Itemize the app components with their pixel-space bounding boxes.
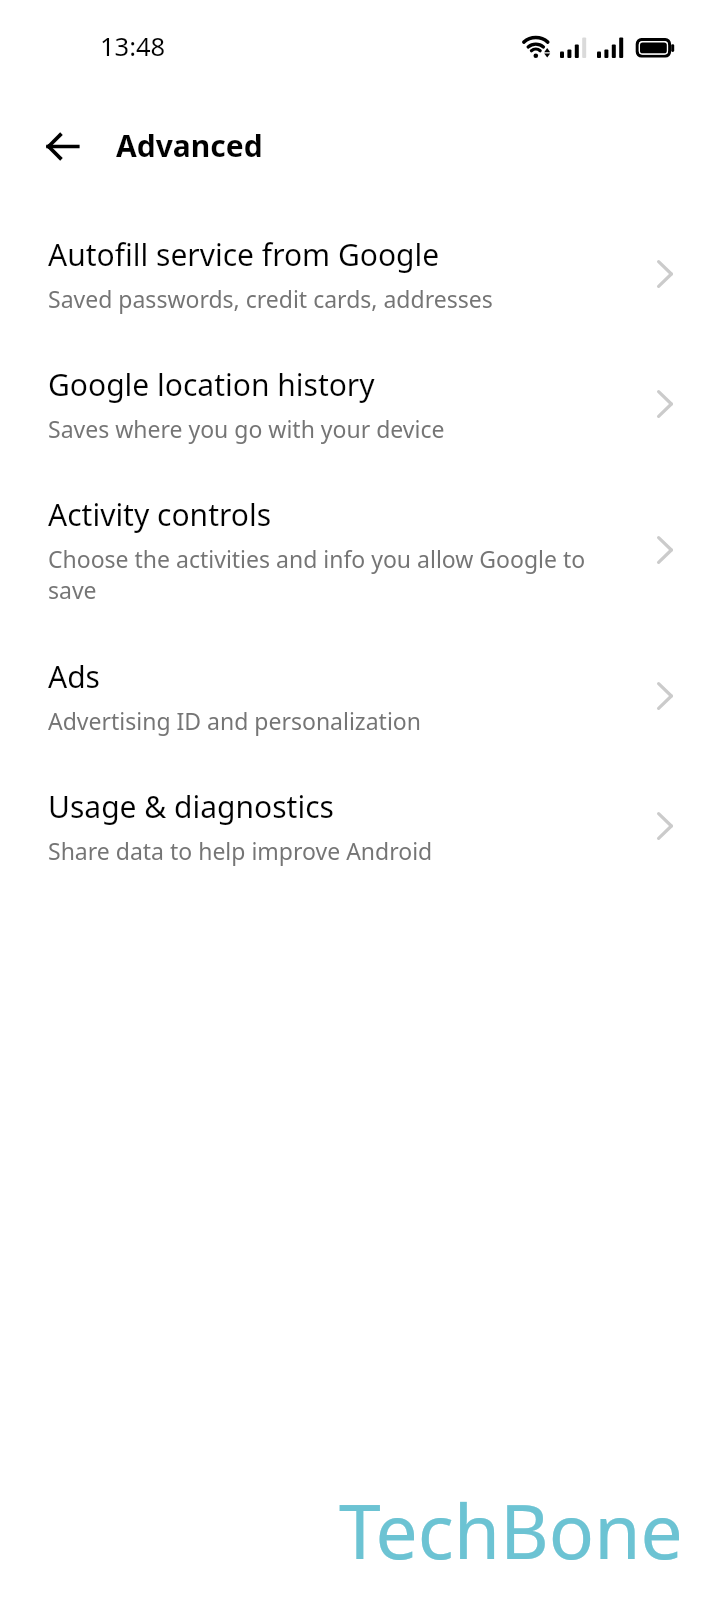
staticText: Saved passwords, credit cards, addresses xyxy=(48,283,493,314)
staticText: Choose the activities and info you allow… xyxy=(48,543,588,606)
staticText: Ads xyxy=(48,656,100,697)
staticText: TechBone xyxy=(339,1479,683,1581)
staticText: Google location history xyxy=(48,364,375,405)
button[interactable]: Usage & diagnostics xyxy=(0,761,720,891)
staticText: Activity controls xyxy=(48,494,272,535)
button[interactable]: Back xyxy=(31,115,93,177)
button[interactable]: Autofill service from Google xyxy=(0,209,720,339)
staticText: Advanced xyxy=(116,125,263,166)
staticText: Autofill service from Google xyxy=(48,234,440,275)
staticText: Share data to help improve Android xyxy=(48,835,433,866)
staticText: Usage & diagnostics xyxy=(48,786,334,827)
button[interactable]: Google location history xyxy=(0,339,720,469)
staticText: 13:48 xyxy=(100,29,166,64)
staticText: Advertising ID and personalization xyxy=(48,705,421,736)
staticText: Saves where you go with your device xyxy=(48,413,445,444)
button[interactable]: Ads xyxy=(0,631,720,761)
button[interactable]: Activity controls xyxy=(0,469,720,631)
